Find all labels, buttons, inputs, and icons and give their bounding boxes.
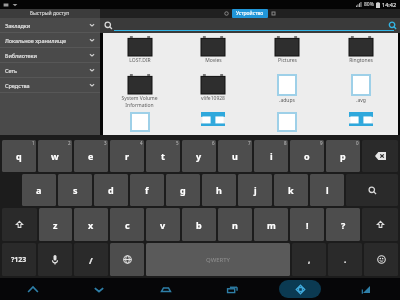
- button[interactable]: f: [130, 174, 164, 206]
- button[interactable]: n: [218, 208, 252, 241]
- button[interactable]: ?: [250, 74, 324, 112]
- staticText: 9: [320, 140, 323, 146]
- button[interactable]: Move window: [279, 280, 321, 298]
- button[interactable]: r: [110, 140, 144, 172]
- button[interactable]: Recent apps: [199, 278, 266, 300]
- button[interactable]: i: [254, 140, 288, 172]
- button[interactable]: l: [310, 174, 344, 206]
- button[interactable]: j: [238, 174, 272, 206]
- button[interactable]: y: [182, 140, 216, 172]
- button[interactable]: /: [74, 243, 108, 276]
- button[interactable]: [324, 112, 398, 132]
- button[interactable]: Устройство: [232, 9, 268, 18]
- button[interactable]: x: [74, 208, 108, 241]
- staticText: d: [108, 184, 114, 196]
- button[interactable]: [176, 112, 250, 132]
- button[interactable]: ?: [250, 112, 324, 132]
- button[interactable]: .: [328, 243, 362, 276]
- staticText: i: [270, 150, 273, 162]
- button[interactable]: Search: [388, 21, 397, 30]
- button[interactable]: z: [39, 208, 72, 241]
- staticText: !: [306, 219, 309, 231]
- staticText: .avg: [356, 97, 366, 104]
- button[interactable]: ,: [292, 243, 326, 276]
- staticText: j: [254, 184, 257, 196]
- button[interactable]: w: [38, 140, 72, 172]
- button[interactable]: u: [218, 140, 252, 172]
- button[interactable]: c: [110, 208, 144, 241]
- staticText: Локальное хранилище: [5, 37, 66, 44]
- staticText: ,: [308, 254, 311, 265]
- button[interactable]: t: [146, 140, 180, 172]
- staticText: Быстрый доступ: [30, 10, 70, 17]
- staticText: Movies: [205, 57, 222, 64]
- button[interactable]: !: [290, 208, 324, 241]
- button[interactable]: Средства: [0, 78, 100, 93]
- button[interactable]: Emoji: [364, 243, 398, 276]
- staticText: b: [196, 219, 202, 231]
- button[interactable]: v: [146, 208, 180, 241]
- staticText: 2: [68, 140, 71, 146]
- button[interactable]: h: [202, 174, 236, 206]
- staticText: 3: [104, 140, 107, 146]
- button[interactable]: k: [274, 174, 308, 206]
- button[interactable]: Pictures: [250, 36, 324, 74]
- button[interactable]: ?: [326, 208, 360, 241]
- button[interactable]: Локальное хранилище: [0, 33, 100, 48]
- button[interactable]: d: [94, 174, 128, 206]
- staticText: 7: [248, 140, 251, 146]
- button[interactable]: g: [166, 174, 200, 206]
- staticText: .: [344, 254, 347, 265]
- button[interactable]: a: [22, 174, 56, 206]
- staticText: Ringtones: [349, 57, 373, 64]
- staticText: z: [53, 219, 58, 231]
- button[interactable]: m: [254, 208, 288, 241]
- staticText: 6: [212, 140, 215, 146]
- staticText: l: [326, 184, 329, 196]
- button[interactable]: Ringtones: [324, 36, 398, 74]
- button[interactable]: o: [290, 140, 324, 172]
- button[interactable]: Home: [132, 278, 199, 300]
- staticText: 8: [284, 140, 287, 146]
- staticText: m: [267, 219, 276, 231]
- button[interactable]: s: [58, 174, 92, 206]
- staticText: f: [145, 184, 149, 196]
- button[interactable]: Backspace: [362, 140, 398, 172]
- button[interactable]: Space: [146, 243, 290, 276]
- staticText: r: [125, 150, 130, 162]
- staticText: k: [288, 184, 294, 196]
- button[interactable]: ?123: [2, 243, 36, 276]
- staticText: x: [88, 219, 94, 231]
- button[interactable]: System Volume Information: [103, 74, 176, 112]
- button[interactable]: Hide keyboard: [66, 278, 132, 300]
- button[interactable]: e: [74, 140, 108, 172]
- button[interactable]: Закладки: [0, 18, 100, 33]
- button[interactable]: ?: [103, 112, 176, 132]
- button[interactable]: Библиотеки: [0, 48, 100, 63]
- button[interactable]: Movies: [176, 36, 250, 74]
- button[interactable]: q: [2, 140, 36, 172]
- staticText: 0: [356, 140, 359, 146]
- button[interactable]: Collapse keyboard: [0, 278, 66, 300]
- button[interactable]: p: [326, 140, 360, 172]
- staticText: w: [51, 150, 59, 162]
- staticText: p: [340, 150, 346, 162]
- staticText: ?: [341, 219, 346, 231]
- staticText: v: [160, 219, 166, 231]
- button[interactable]: Search: [346, 174, 398, 206]
- button[interactable]: Сеть: [0, 63, 100, 78]
- button[interactable]: Change language: [110, 243, 144, 276]
- button[interactable]: Resize: [333, 278, 400, 300]
- button[interactable]: Shift: [362, 208, 398, 241]
- staticText: 80%: [364, 1, 374, 8]
- staticText: c: [125, 219, 130, 231]
- button[interactable]: ?: [324, 74, 398, 112]
- button[interactable]: LOST.DIR: [103, 36, 176, 74]
- staticText: 1: [32, 140, 35, 146]
- staticText: g: [180, 184, 186, 196]
- button[interactable]: Voice input: [38, 243, 72, 276]
- button[interactable]: b: [182, 208, 216, 241]
- button[interactable]: vlife10928: [176, 74, 250, 112]
- button[interactable]: Shift: [2, 208, 37, 241]
- staticText: 5: [176, 140, 179, 146]
